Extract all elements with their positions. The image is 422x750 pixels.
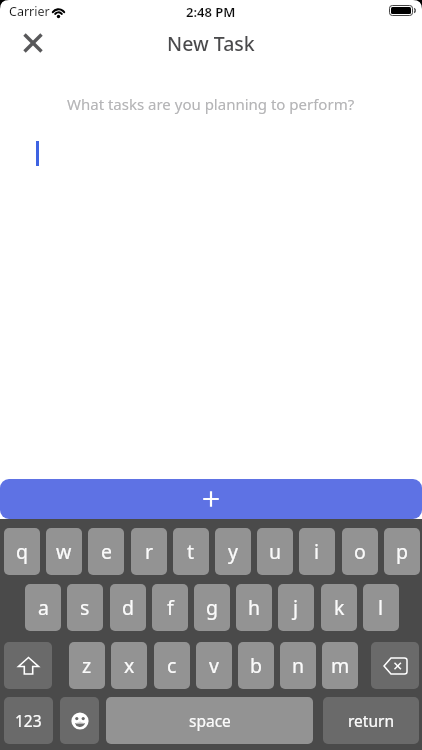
button[interactable]: t xyxy=(173,528,209,575)
button[interactable]: a xyxy=(25,584,61,631)
staticText: Carrier xyxy=(9,3,50,20)
button[interactable]: c xyxy=(154,642,190,689)
staticText: x xyxy=(124,652,135,679)
button[interactable]: h xyxy=(236,584,272,631)
button[interactable] xyxy=(371,642,419,689)
button[interactable]: q xyxy=(4,528,40,575)
staticText: h xyxy=(248,594,261,621)
button[interactable]: e xyxy=(88,528,124,575)
staticText: space xyxy=(189,710,231,731)
staticText: t xyxy=(187,538,195,565)
staticText: w xyxy=(56,538,72,565)
button[interactable]: return xyxy=(323,697,419,744)
button[interactable]: o xyxy=(342,528,378,575)
staticText: i xyxy=(314,538,320,565)
staticText: s xyxy=(80,594,90,621)
button[interactable]: 123 xyxy=(4,697,53,744)
button[interactable]: i xyxy=(299,528,335,575)
button[interactable]: b xyxy=(238,642,274,689)
staticText: p xyxy=(396,538,408,565)
button[interactable] xyxy=(60,697,99,744)
staticText: l xyxy=(378,594,384,621)
staticText: 2:48 PM xyxy=(186,3,236,21)
staticText: return xyxy=(348,710,394,731)
button[interactable]: l xyxy=(363,584,399,631)
button[interactable]: m xyxy=(322,642,358,689)
staticText: y xyxy=(228,538,238,565)
button[interactable]: g xyxy=(194,584,230,631)
button[interactable]: f xyxy=(152,584,188,631)
button[interactable] xyxy=(4,642,52,689)
button[interactable]: r xyxy=(131,528,167,575)
button[interactable]: space xyxy=(106,697,313,744)
staticText: v xyxy=(209,652,219,679)
button[interactable]: y xyxy=(215,528,251,575)
button[interactable]: u xyxy=(257,528,293,575)
staticText: c xyxy=(167,652,177,679)
staticText: n xyxy=(292,652,305,679)
button[interactable]: z xyxy=(69,642,105,689)
staticText: q xyxy=(16,538,28,565)
staticText: k xyxy=(334,594,345,621)
staticText: m xyxy=(331,652,350,679)
button[interactable]: j xyxy=(278,584,314,631)
staticText: What tasks are you planning to perform? xyxy=(67,94,355,114)
staticText: e xyxy=(101,538,112,565)
staticText: d xyxy=(122,594,134,621)
button[interactable]: p xyxy=(384,528,420,575)
staticText: j xyxy=(293,594,299,621)
button[interactable]: k xyxy=(321,584,357,631)
button[interactable]: s xyxy=(67,584,103,631)
button[interactable]: x xyxy=(111,642,147,689)
staticText: g xyxy=(206,594,218,621)
button[interactable]: v xyxy=(196,642,232,689)
button[interactable] xyxy=(0,479,422,519)
staticText: r xyxy=(145,538,154,565)
button[interactable]: d xyxy=(110,584,146,631)
staticText: 123 xyxy=(15,710,42,731)
staticText: New Task xyxy=(167,30,255,57)
staticText: a xyxy=(38,594,49,621)
staticText: z xyxy=(82,652,92,679)
button[interactable]: w xyxy=(46,528,82,575)
staticText: b xyxy=(250,652,262,679)
staticText: f xyxy=(167,594,174,621)
staticText: u xyxy=(269,538,282,565)
button[interactable]: n xyxy=(280,642,316,689)
staticText: o xyxy=(354,538,366,565)
button[interactable] xyxy=(16,26,50,60)
